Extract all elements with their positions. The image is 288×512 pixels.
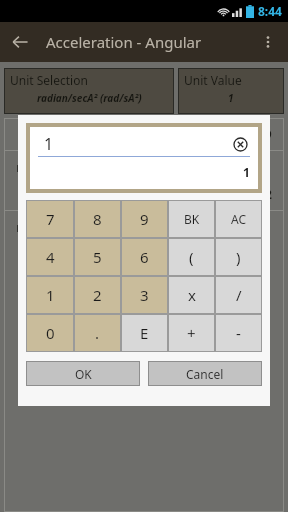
button[interactable]: E xyxy=(121,314,168,352)
button[interactable]: 1 xyxy=(30,127,258,189)
staticText: 1 xyxy=(228,91,234,105)
button[interactable]: 9 xyxy=(121,200,168,238)
staticText: Acceleration - Angular xyxy=(46,32,202,52)
staticText: 3 xyxy=(140,285,149,305)
staticText: 9.54929659 xyxy=(201,125,272,143)
staticText: radian/secA² (rad/sA²) xyxy=(37,91,142,105)
button[interactable]: 2 xyxy=(74,276,121,314)
staticText: 1 xyxy=(46,285,55,305)
button[interactable]: 3 xyxy=(121,276,168,314)
staticText: 4 xyxy=(46,247,55,267)
staticText: 6 xyxy=(140,247,149,267)
staticText: ( xyxy=(189,247,194,267)
button[interactable]: AC xyxy=(215,200,262,238)
staticText: 9 xyxy=(140,209,149,229)
staticText: 0 xyxy=(46,323,55,343)
button[interactable]: 5 xyxy=(74,238,121,276)
staticText: . xyxy=(95,323,100,343)
button[interactable]: Clear xyxy=(230,134,250,154)
button[interactable]: / xyxy=(215,276,262,314)
staticText: 5 xyxy=(93,247,102,267)
button[interactable]: More options xyxy=(248,22,288,62)
button[interactable]: revolution/hrA² (rev/hrA²) xyxy=(4,151,284,210)
button[interactable]: Unit Selection xyxy=(4,68,174,114)
staticText: 2062648.06272 xyxy=(179,185,272,203)
button[interactable]: 7 xyxy=(26,200,74,238)
staticText: 2 xyxy=(93,285,102,305)
button[interactable]: 9.54929659 xyxy=(4,118,284,150)
staticText: + xyxy=(187,323,196,343)
button[interactable]: ) xyxy=(215,238,262,276)
staticText: 1 xyxy=(44,133,54,155)
button[interactable]: 4 xyxy=(26,238,74,276)
staticText: 7 xyxy=(46,209,55,229)
button[interactable]: Back xyxy=(0,22,40,62)
button[interactable]: BK xyxy=(168,200,215,238)
button[interactable]: OK xyxy=(26,361,140,386)
button[interactable]: . xyxy=(74,314,121,352)
staticText: - xyxy=(236,323,241,343)
staticText: / xyxy=(236,285,242,305)
button[interactable]: x xyxy=(168,276,215,314)
button[interactable]: ( xyxy=(168,238,215,276)
staticText: OK xyxy=(75,366,92,382)
staticText: 8 xyxy=(93,209,102,229)
button[interactable]: Unit Value xyxy=(178,68,284,114)
button[interactable]: + xyxy=(168,314,215,352)
staticText: E xyxy=(140,323,149,343)
button[interactable]: 8 xyxy=(74,200,121,238)
button[interactable]: Cancel xyxy=(148,361,262,386)
button[interactable]: revolution/minA² (rev/minA²) xyxy=(4,211,284,252)
staticText: AC xyxy=(231,211,247,227)
button[interactable]: 1 xyxy=(26,276,74,314)
staticText: revolution/hrA² (rev/hrA²) xyxy=(16,158,171,176)
staticText: 8:44 xyxy=(258,3,282,19)
staticText: Cancel xyxy=(186,366,224,382)
staticText: ) xyxy=(236,247,241,267)
staticText: 1 xyxy=(243,164,250,180)
staticText: x xyxy=(188,285,196,305)
button[interactable]: 0 xyxy=(26,314,74,352)
staticText: revolution/minA² (rev/minA²) xyxy=(16,218,191,236)
button[interactable]: - xyxy=(215,314,262,352)
staticText: Unit Value xyxy=(184,72,242,88)
staticText: Unit Selection xyxy=(10,72,88,88)
staticText: BK xyxy=(184,211,200,227)
button[interactable]: 6 xyxy=(121,238,168,276)
